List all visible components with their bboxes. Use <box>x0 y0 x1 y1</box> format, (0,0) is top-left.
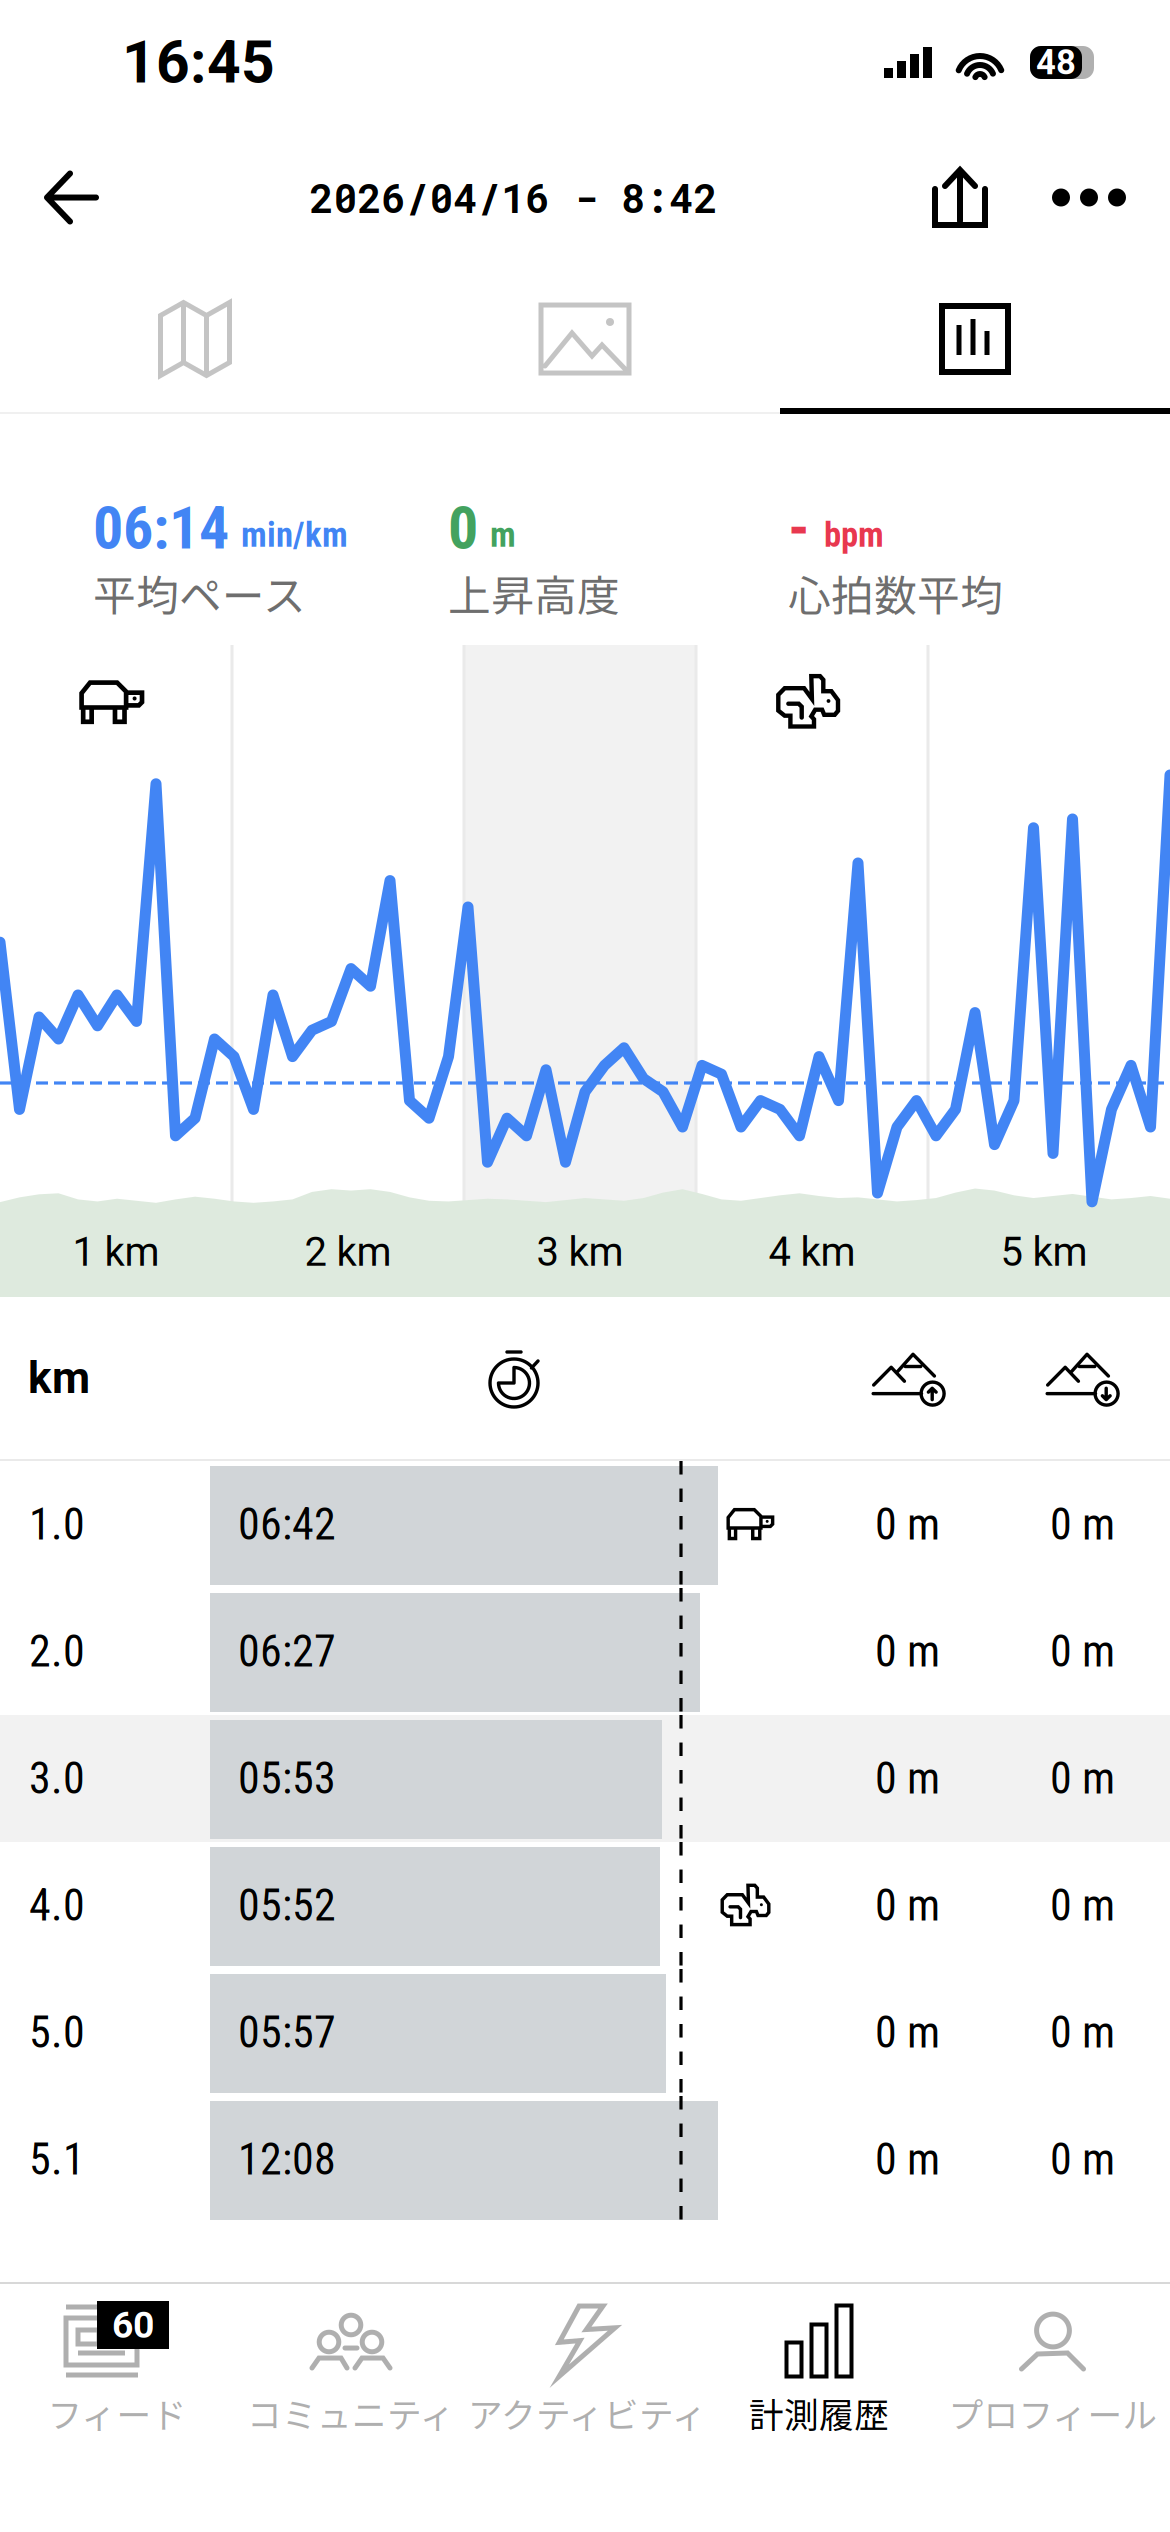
staticText: 05:52 <box>238 1880 336 1931</box>
staticText: 0 <box>448 493 478 563</box>
staticText: 5.0 <box>29 2007 85 2058</box>
staticText: 0 m <box>1050 1626 1115 1677</box>
staticText: 0 m <box>875 1499 940 1550</box>
staticText: 1.0 <box>29 1499 85 1550</box>
staticText: 06:27 <box>238 1626 336 1677</box>
button[interactable]: Map <box>0 270 390 408</box>
button[interactable]: More <box>1022 128 1170 266</box>
button[interactable]: Charts <box>780 270 1170 408</box>
staticText: 心拍数平均 <box>788 562 1003 624</box>
staticText: 16:45 <box>122 28 275 97</box>
staticText: 05:53 <box>238 1753 336 1804</box>
staticText: コミュニティ <box>247 2388 455 2438</box>
button[interactable]: Photos <box>390 270 780 408</box>
staticText: プロフィール <box>948 2388 1157 2438</box>
staticText: 2026/04/16 - 8:42 <box>309 171 717 224</box>
staticText: 60 <box>112 2303 154 2347</box>
staticText: 06:42 <box>238 1499 336 1550</box>
button[interactable]: 計測履歴 <box>702 2295 936 2445</box>
button[interactable]: プロフィール <box>936 2295 1170 2445</box>
staticText: bpm <box>824 515 884 555</box>
staticText: 12:08 <box>238 2134 336 2185</box>
staticText: 計測履歴 <box>749 2388 889 2438</box>
staticText: 0 m <box>875 2007 940 2058</box>
staticText: 0 m <box>1050 1880 1115 1931</box>
staticText: 4.0 <box>29 1880 85 1931</box>
staticText: 0 m <box>1050 1499 1115 1550</box>
staticText: 0 m <box>875 1753 940 1804</box>
button[interactable]: Back <box>0 127 129 267</box>
staticText: 5.1 <box>29 2134 85 2185</box>
staticText: 4 km <box>768 1229 855 1275</box>
staticText: 0 m <box>875 1626 940 1677</box>
button[interactable]: コミュニティ <box>234 2295 468 2445</box>
staticText: 5 km <box>1000 1229 1087 1275</box>
staticText: 0 m <box>875 2134 940 2185</box>
staticText: m <box>490 515 516 555</box>
staticText: 0 m <box>875 1880 940 1931</box>
button[interactable]: アクティビティ <box>468 2295 702 2445</box>
staticText: 2 km <box>304 1229 391 1275</box>
staticText: min/km <box>241 515 348 555</box>
staticText: 2.0 <box>29 1626 85 1677</box>
button[interactable]: 60 <box>0 2295 234 2445</box>
staticText: 0 m <box>1050 2134 1115 2185</box>
staticText: フィード <box>47 2388 186 2438</box>
staticText: - <box>788 493 810 563</box>
staticText: 06:14 <box>93 493 229 563</box>
staticText: 48 <box>1036 42 1076 83</box>
staticText: km <box>28 1352 90 1404</box>
staticText: 上昇高度 <box>448 562 620 624</box>
staticText: 0 m <box>1050 1753 1115 1804</box>
staticText: 3 km <box>536 1229 623 1275</box>
staticText: アクティビティ <box>468 2388 707 2438</box>
staticText: 0 m <box>1050 2007 1115 2058</box>
staticText: 3.0 <box>29 1753 85 1804</box>
button[interactable]: Share <box>898 127 1022 268</box>
staticText: 1 km <box>72 1229 159 1275</box>
staticText: 平均ペース <box>93 562 306 624</box>
staticText: 05:57 <box>238 2007 336 2058</box>
